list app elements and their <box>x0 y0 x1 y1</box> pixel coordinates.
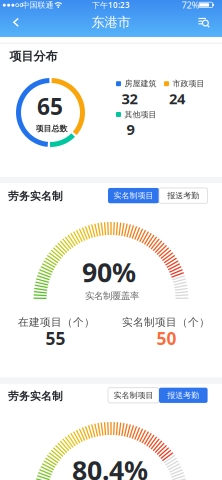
staticText: 32 <box>121 89 137 108</box>
staticText: 项目分布 <box>9 49 57 64</box>
staticText: 9 <box>126 120 134 139</box>
staticText: 东港市 <box>91 14 130 30</box>
staticText: 实名制项目（个） <box>122 316 210 329</box>
staticText: 房屋建筑 <box>124 79 156 89</box>
button[interactable]: 实名制项目 <box>108 188 159 203</box>
staticText: 65 <box>37 91 63 121</box>
staticText: 市政项目 <box>172 79 204 89</box>
staticText: 报送考勤 <box>167 191 199 200</box>
staticText: 80.4% <box>72 452 148 480</box>
staticText: 报送考勤 <box>167 390 199 400</box>
staticText: 72% <box>181 0 199 11</box>
button[interactable]: 实名制项目 <box>108 388 159 403</box>
staticText: 实名制项目 <box>113 191 153 200</box>
button[interactable]: Search <box>198 17 210 28</box>
button[interactable]: Back <box>13 18 19 27</box>
staticText: 劳务实名制 <box>8 190 63 203</box>
staticText: 中国联通 <box>21 0 53 10</box>
staticText: 50 <box>156 327 176 350</box>
staticText: 项目总数 <box>35 124 67 133</box>
staticText: 在建项目（个） <box>18 316 95 329</box>
staticText: 24 <box>169 89 185 108</box>
staticText: 实名制项目 <box>113 390 153 400</box>
button[interactable]: 报送考勤 <box>159 188 208 203</box>
staticText: 55 <box>45 327 65 350</box>
staticText: 劳务实名制 <box>8 390 63 403</box>
staticText: 其他项目 <box>124 110 156 119</box>
staticText: 实名制覆盖率 <box>85 290 139 302</box>
staticText: 90% <box>82 254 136 290</box>
button[interactable]: 报送考勤 <box>159 388 208 403</box>
staticText: 下午10:23 <box>92 0 130 10</box>
